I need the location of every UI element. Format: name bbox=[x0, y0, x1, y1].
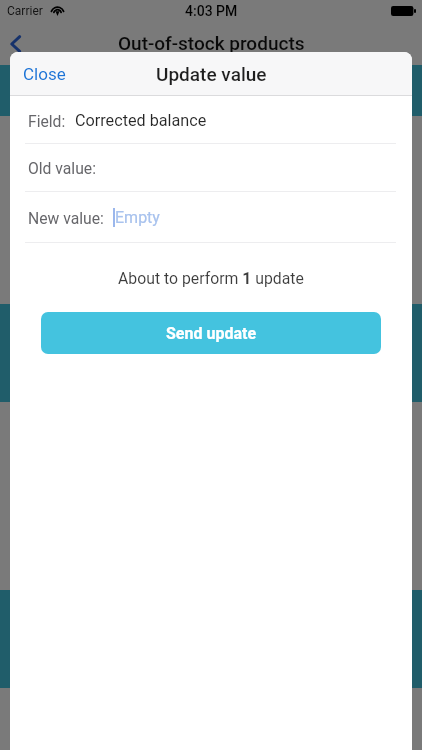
staticText: Old value: bbox=[28, 159, 96, 177]
staticText: New value: bbox=[28, 209, 104, 227]
button[interactable]: Back bbox=[0, 22, 44, 65]
button[interactable]: Close bbox=[23, 64, 66, 84]
staticText: Close bbox=[23, 64, 66, 84]
staticText: Send update bbox=[166, 324, 257, 343]
staticText: 4:03 PM bbox=[185, 3, 238, 19]
button[interactable]: Send update bbox=[41, 312, 381, 354]
staticText: Corrected balance bbox=[75, 111, 207, 130]
staticText: Update value bbox=[156, 63, 267, 85]
staticText: Field: bbox=[28, 112, 66, 130]
staticText: About to perform 1 update bbox=[118, 269, 304, 288]
staticText: Carrier bbox=[7, 4, 43, 18]
staticText: Out-of-stock products bbox=[118, 32, 305, 54]
staticText: Empty bbox=[115, 208, 160, 227]
